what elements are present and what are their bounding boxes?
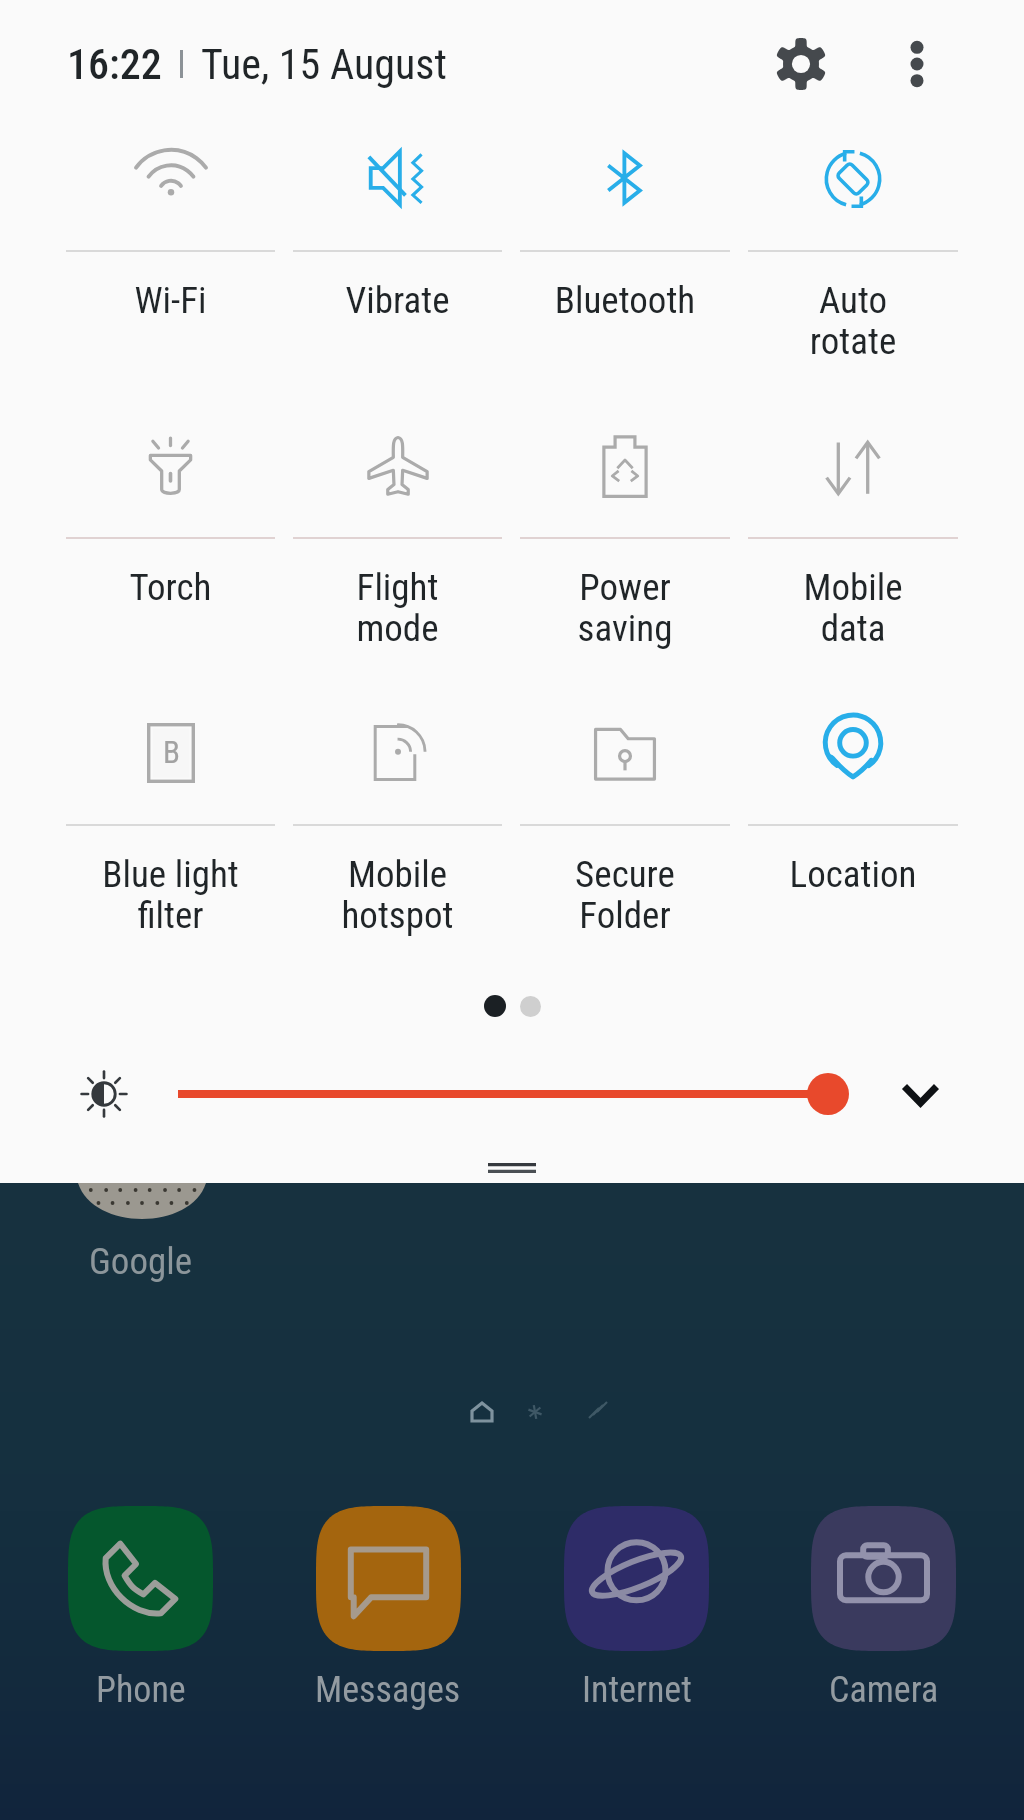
button[interactable]: Mobile hotspot [284, 720, 511, 1007]
staticText: Tue, 15 August [201, 40, 447, 89]
button[interactable]: Camera [811, 1506, 956, 1711]
button[interactable]: More options [882, 29, 952, 99]
staticText: Mobile hotspot [284, 853, 511, 937]
button[interactable]: Expand quick settings [887, 1062, 953, 1128]
button[interactable]: Auto rotate [739, 146, 967, 433]
button[interactable]: Torch [57, 433, 284, 720]
staticText: Internet [582, 1669, 692, 1711]
staticText: 16:22 [67, 40, 162, 89]
staticText: Flight mode [284, 566, 511, 650]
staticText: Google [89, 1240, 193, 1283]
button[interactable]: Location [739, 720, 967, 1007]
button[interactable]: B [57, 720, 284, 1007]
staticText: B [163, 734, 180, 770]
staticText: Location [739, 853, 967, 896]
staticText: Torch [57, 566, 284, 609]
button[interactable]: Mobile data [739, 433, 967, 720]
staticText: Mobile data [739, 566, 967, 650]
staticText: Camera [829, 1669, 939, 1711]
button[interactable] [520, 996, 541, 1017]
button[interactable]: Phone [68, 1506, 213, 1711]
button[interactable]: Quick settings [756, 19, 846, 109]
button[interactable] [484, 995, 506, 1017]
staticText: Phone [96, 1669, 186, 1711]
staticText: Vibrate [284, 279, 511, 322]
staticText: Secure Folder [511, 853, 739, 937]
button[interactable]: Power saving [511, 433, 739, 720]
button[interactable]: Internet [564, 1506, 709, 1711]
button[interactable]: Auto brightness [70, 1060, 138, 1128]
staticText: Bluetooth [511, 279, 739, 322]
button[interactable]: Wi-Fi [57, 146, 284, 433]
button[interactable]: Flight mode [284, 433, 511, 720]
staticText: Messages [315, 1669, 461, 1711]
button[interactable]: Bluetooth [511, 146, 739, 433]
staticText: Power saving [511, 566, 739, 650]
button[interactable]: Brightness [158, 1060, 870, 1128]
button[interactable]: Secure Folder [511, 720, 739, 1007]
staticText: Blue light filter [57, 853, 284, 937]
staticText: Auto rotate [739, 279, 967, 363]
button[interactable]: Messages [315, 1506, 461, 1711]
staticText: Wi-Fi [57, 279, 284, 322]
button[interactable]: Vibrate [284, 146, 511, 433]
